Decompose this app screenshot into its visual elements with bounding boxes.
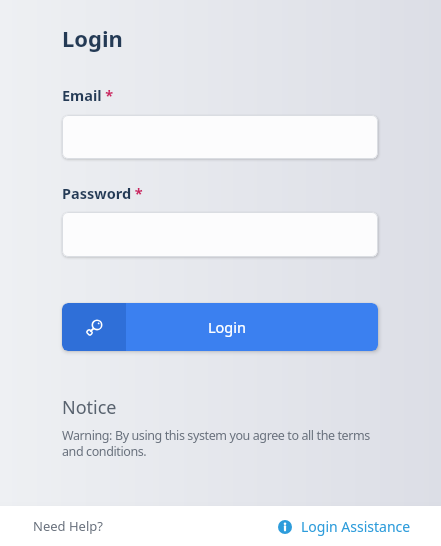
button[interactable]: Login Assistance xyxy=(274,511,415,542)
staticText: Login Assistance xyxy=(301,517,411,536)
staticText: Login xyxy=(208,317,246,337)
button[interactable]: Login xyxy=(62,303,378,351)
staticText: Login xyxy=(62,23,123,53)
staticText: Email * xyxy=(62,85,114,105)
staticText: Notice xyxy=(62,395,117,420)
staticText: Need Help? xyxy=(33,517,103,535)
staticText: Warning: By using this system you agree … xyxy=(62,427,370,460)
staticText: Password * xyxy=(62,183,143,203)
button[interactable] xyxy=(62,115,378,159)
button[interactable] xyxy=(62,212,378,257)
